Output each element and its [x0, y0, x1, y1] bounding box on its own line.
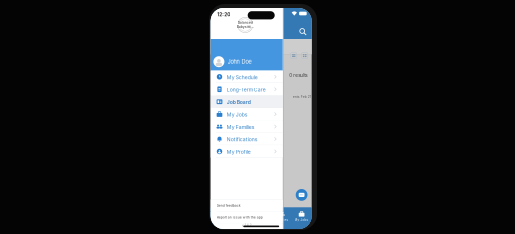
button[interactable]: My Families	[211, 120, 283, 133]
staticText: Babysitting	[237, 25, 254, 29]
button[interactable]: Search	[298, 26, 309, 37]
staticText: 12:20	[217, 12, 230, 17]
button[interactable]: Families	[271, 207, 291, 229]
staticText: Schedule	[213, 218, 228, 222]
staticText: Job Board	[227, 99, 251, 105]
staticText: Job Board	[253, 218, 269, 222]
staticText: My Profile	[227, 149, 251, 155]
button[interactable]: Grid view	[301, 52, 309, 60]
button[interactable]: Messages	[296, 189, 307, 201]
button[interactable]: Job Board	[251, 207, 271, 229]
staticText: Balanced	[238, 20, 253, 24]
button[interactable]: List view	[290, 52, 298, 60]
staticText: Long-Term	[232, 218, 249, 222]
button[interactable]: My Jobs	[291, 207, 312, 229]
staticText: Families	[274, 218, 288, 222]
staticText: 0 results	[289, 72, 307, 78]
staticText: My Jobs	[227, 111, 248, 118]
button[interactable]: Long-Term Care	[211, 83, 283, 95]
button[interactable]: Report an issue with the app	[211, 212, 283, 223]
staticText: My Jobs	[295, 218, 309, 222]
staticText: Notifications	[227, 136, 258, 142]
button[interactable]: Long-Term	[231, 207, 251, 229]
button[interactable]: Schedule	[211, 207, 231, 229]
staticText: Report an issue with the app	[217, 215, 263, 219]
button[interactable]: My Jobs	[211, 108, 283, 120]
staticText: Long-Term Care	[227, 87, 266, 93]
staticText: My Families	[227, 124, 255, 130]
staticText: John Doe	[228, 58, 252, 65]
button[interactable]: My Schedule	[211, 71, 283, 83]
staticText: ents Feb 21	[293, 95, 311, 99]
staticText: v 1.4.2	[242, 224, 252, 227]
button[interactable]: My Profile	[211, 145, 283, 158]
staticText: Send feedback	[217, 204, 241, 208]
button[interactable]: Notifications	[211, 133, 283, 145]
staticText: My Schedule	[227, 74, 258, 80]
button[interactable]: Job Board	[211, 95, 283, 108]
button[interactable]: Send feedback	[211, 200, 283, 211]
